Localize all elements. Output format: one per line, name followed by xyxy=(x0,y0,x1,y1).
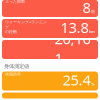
staticText: 体脂肪率 xyxy=(5,72,21,76)
staticText: 体重 xyxy=(5,86,13,91)
staticText: 階 xyxy=(91,9,95,14)
staticText: 20,161 xyxy=(54,29,90,68)
staticText: 歩数 xyxy=(5,30,13,35)
staticText: 8 xyxy=(82,0,90,17)
staticText: 上った階数 xyxy=(5,0,25,4)
staticText: 身体測定値 xyxy=(4,63,29,70)
button[interactable]: 体重 xyxy=(0,93,100,99)
staticText: 今日 20:34 xyxy=(79,17,95,21)
button[interactable]: 体脂肪率 xyxy=(0,72,100,91)
staticText: 今日 20:34 xyxy=(79,68,95,72)
staticText: km xyxy=(89,29,95,34)
staticText: 13.8 xyxy=(60,17,88,37)
staticText: 25.4 xyxy=(62,70,90,90)
staticText: ウォーキング+ランニング の距離 xyxy=(5,19,47,34)
staticText: 今日 23:58 xyxy=(79,90,95,93)
button[interactable]: ウォーキング+ランニング の距離 xyxy=(0,19,100,38)
button[interactable]: 上った階数 xyxy=(0,0,100,17)
staticText: % xyxy=(91,81,95,87)
staticText: 今日 20:34 xyxy=(79,37,95,41)
button[interactable]: 歩数 xyxy=(0,40,100,59)
